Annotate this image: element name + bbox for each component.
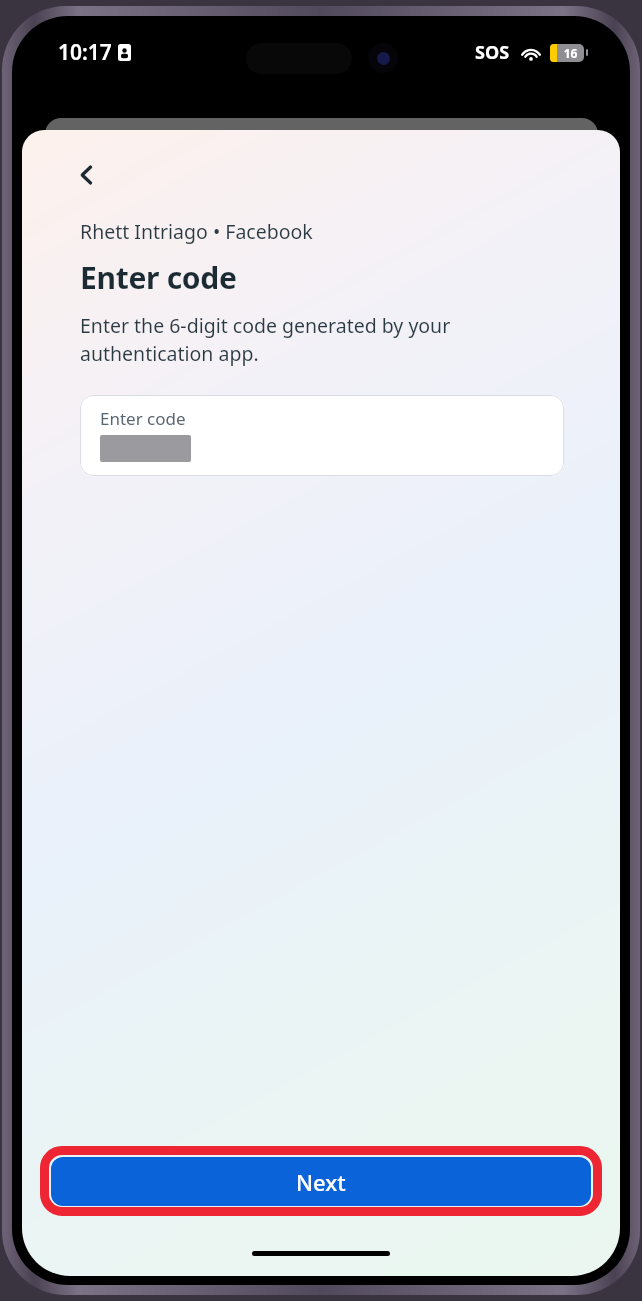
button[interactable]: Enter code <box>80 395 564 476</box>
button[interactable]: Back <box>66 154 108 196</box>
staticText: Enter code <box>80 257 237 298</box>
staticText: Next <box>296 1167 346 1197</box>
staticText: Enter code <box>100 407 186 430</box>
staticText: Rhett Intriago • Facebook <box>80 218 313 245</box>
button[interactable]: Next <box>51 1157 591 1206</box>
staticText: 16 <box>557 45 584 61</box>
staticText: 10:17 <box>58 38 112 67</box>
staticText: SOS <box>475 40 510 65</box>
staticText: Enter the 6-digit code generated by your… <box>80 312 570 367</box>
